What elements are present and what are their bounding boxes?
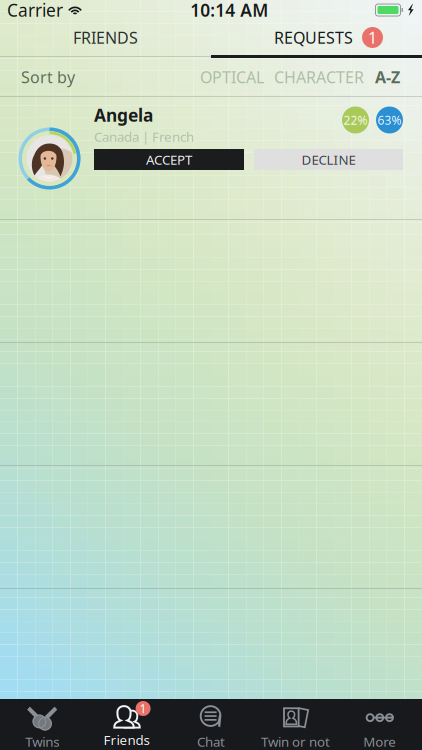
button[interactable]: Twins [0,699,84,750]
button[interactable]: ACCEPT [94,149,244,170]
staticText: CHARACTER [274,66,364,88]
button[interactable]: A-Z [375,66,400,88]
staticText: 22% [343,112,367,128]
button[interactable]: DECLINE [254,149,403,170]
button[interactable]: 1 [84,699,169,750]
staticText: Carrier [7,0,63,21]
staticText: 63% [377,112,401,128]
staticText: 1 [140,700,147,716]
staticText: 10:14 AM [190,0,268,21]
button[interactable]: Chat [169,699,253,750]
staticText: Friends [104,731,150,749]
staticText: 1 [368,27,377,48]
staticText: Angela [94,104,153,127]
button[interactable]: More [338,699,422,750]
staticText: Twins [25,733,59,750]
button[interactable]: OPTICAL [200,66,264,88]
staticText: Twin or not [261,733,330,750]
staticText: Chat [197,733,225,750]
staticText: REQUESTS [274,27,353,48]
button[interactable]: CHARACTER [274,66,364,88]
staticText: More [363,733,396,750]
staticText: A-Z [375,66,400,88]
staticText: Canada | French [94,128,194,145]
staticText: FRIENDS [73,27,138,48]
button[interactable]: REQUESTS [211,20,422,55]
staticText: OPTICAL [200,66,264,88]
staticText: DECLINE [301,151,355,168]
staticText: Sort by [21,66,75,88]
button[interactable]: Twin or not [253,699,338,750]
staticText: ACCEPT [146,151,192,168]
button[interactable]: FRIENDS [0,20,211,55]
